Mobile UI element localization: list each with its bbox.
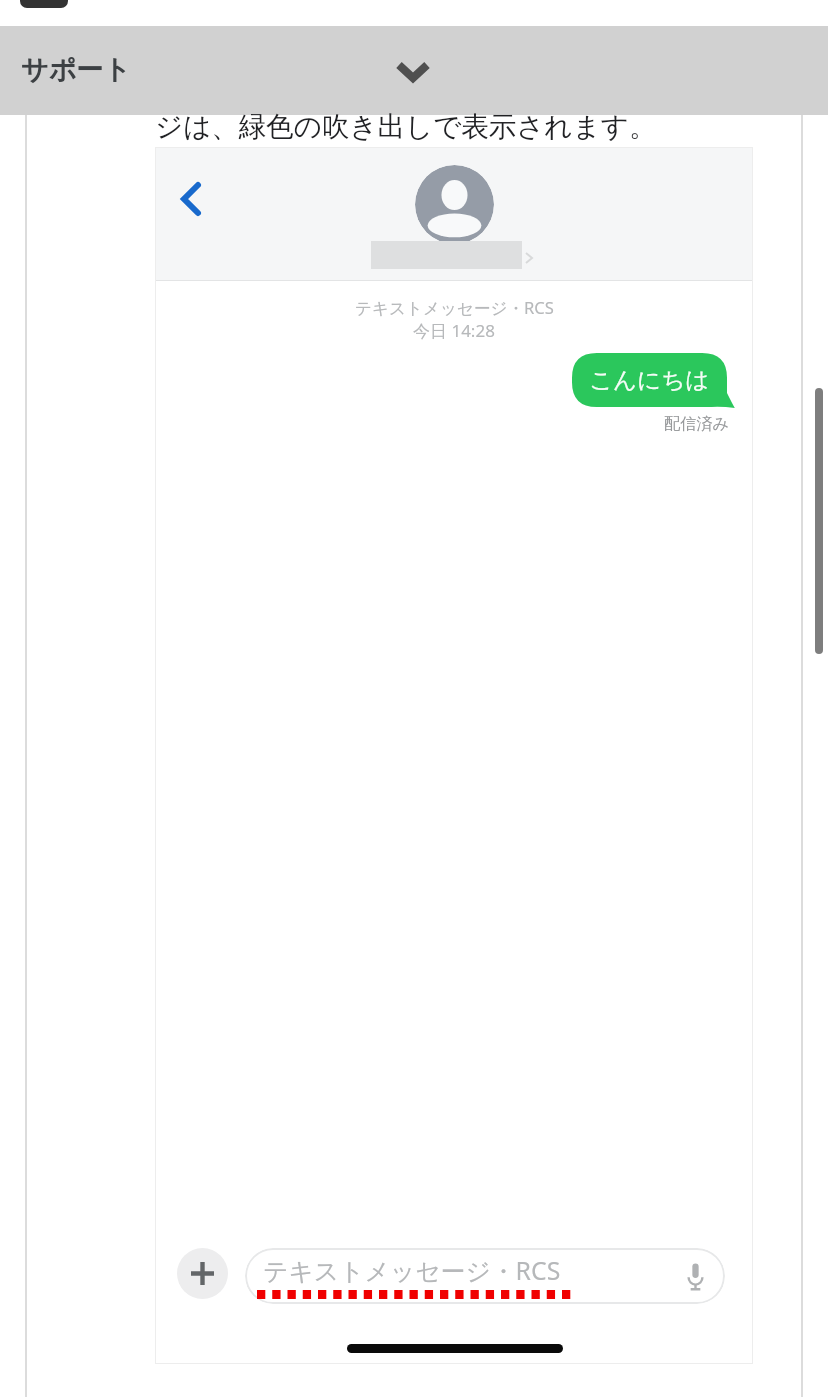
staticText: 配信済み	[664, 413, 730, 433]
staticText: テキストメッセージ・RCS	[355, 296, 554, 319]
staticText: 今日 14:28	[413, 319, 495, 342]
button[interactable]: サポート	[0, 26, 828, 115]
staticText: こんにちは	[589, 365, 710, 395]
button[interactable]: テキストメッセージ・RCS	[245, 1248, 725, 1304]
button[interactable]: Back	[161, 169, 221, 229]
button[interactable]: Expand	[389, 47, 437, 95]
button[interactable]: Add attachment	[177, 1248, 228, 1299]
staticText: ジは、緑色の吹き出しで表示されます。	[155, 110, 657, 145]
staticText: テキストメッセージ・RCS	[263, 1253, 561, 1287]
staticText: サポート	[21, 53, 131, 87]
